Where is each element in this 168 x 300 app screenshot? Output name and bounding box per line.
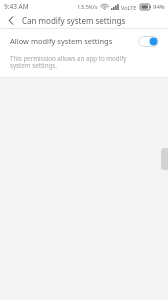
staticText: 9:43 AM xyxy=(4,2,29,11)
staticText: 94% xyxy=(153,3,165,11)
staticText: Allow modify system settings xyxy=(10,36,138,46)
button[interactable]: Allow modify system settings xyxy=(0,29,168,53)
staticText: 13.5K/s xyxy=(77,3,98,11)
staticText: VoLTE xyxy=(121,4,137,11)
staticText: This permission allows an app to modify … xyxy=(10,54,144,70)
button[interactable]: Back xyxy=(0,13,22,28)
button[interactable]: Allow modify system settings toggle xyxy=(138,36,159,47)
staticText: Can modify system settings xyxy=(22,15,126,26)
